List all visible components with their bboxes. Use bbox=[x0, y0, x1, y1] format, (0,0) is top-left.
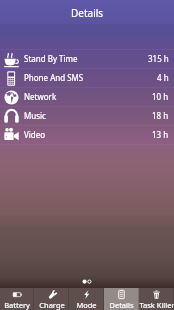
staticText: Stand By Time bbox=[24, 53, 78, 64]
button[interactable]: Battery bbox=[0, 288, 34, 310]
button[interactable]: Charge bbox=[34, 288, 69, 310]
staticText: 13 h bbox=[152, 129, 169, 140]
button[interactable]: Video bbox=[0, 126, 174, 144]
button[interactable]: Details bbox=[104, 288, 139, 310]
staticText: Music bbox=[24, 110, 46, 121]
staticText: 315 h bbox=[148, 53, 169, 64]
staticText: Charge bbox=[39, 300, 65, 310]
button[interactable]: Mode bbox=[69, 288, 104, 310]
staticText: 10 h bbox=[152, 91, 169, 102]
staticText: Task Killer bbox=[139, 300, 174, 310]
staticText: 18 h bbox=[152, 110, 169, 121]
staticText: Details bbox=[109, 300, 134, 310]
staticText: Video bbox=[24, 129, 46, 140]
staticText: 4 h bbox=[157, 72, 169, 83]
staticText: Battery bbox=[4, 300, 30, 310]
staticText: Mode bbox=[76, 300, 97, 310]
button[interactable]: Stand By Time bbox=[0, 50, 174, 68]
button[interactable]: Network bbox=[0, 88, 174, 106]
button[interactable]: Phone And SMS bbox=[0, 69, 174, 87]
staticText: Network bbox=[24, 91, 57, 102]
button[interactable]: Task Killer bbox=[139, 288, 174, 310]
staticText: Details bbox=[71, 6, 104, 20]
button[interactable]: Music bbox=[0, 107, 174, 125]
staticText: Phone And SMS bbox=[24, 72, 84, 83]
